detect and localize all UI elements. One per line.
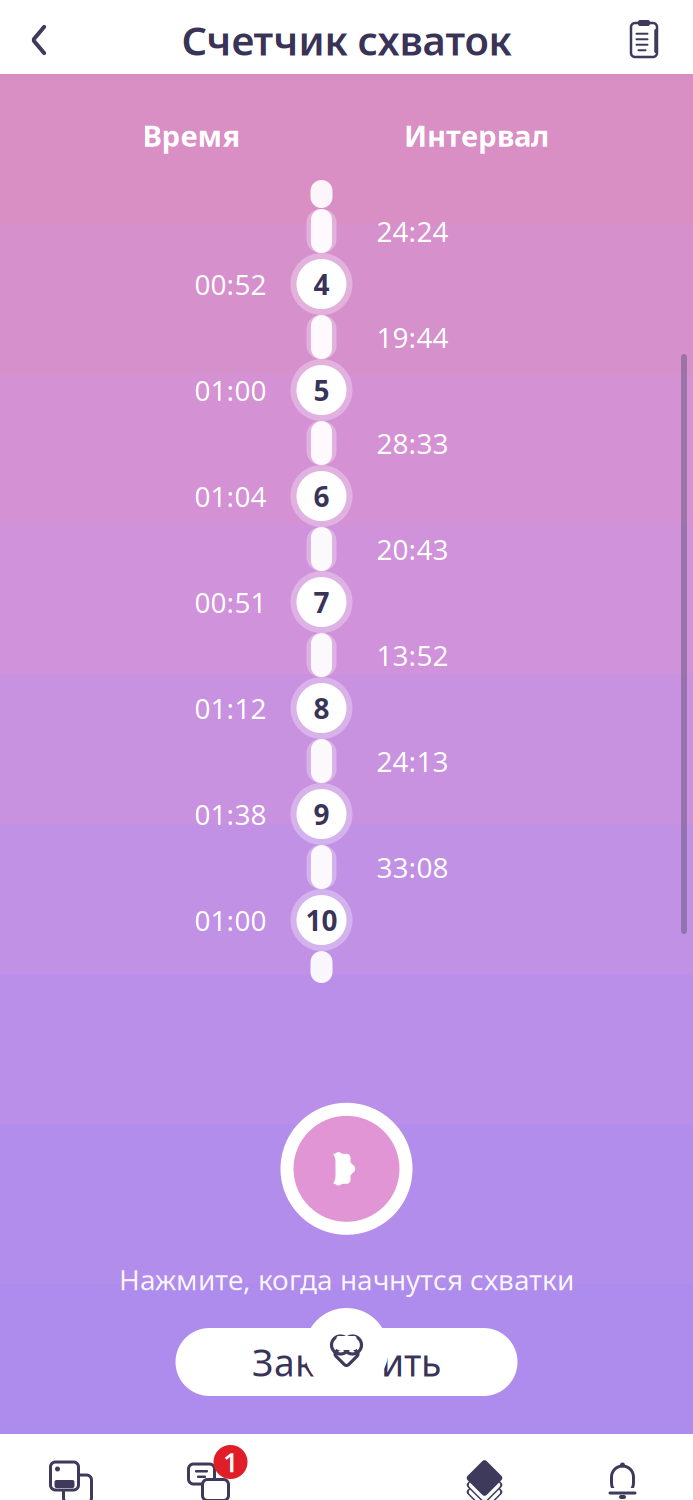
staticText: 01:04: [194, 477, 266, 515]
staticText: 19:44: [376, 318, 448, 356]
staticText: 01:12: [194, 689, 266, 727]
staticText: 10: [305, 901, 337, 939]
staticText: Интервал: [404, 116, 549, 155]
staticText: 01:00: [194, 371, 266, 409]
staticText: 4: [313, 265, 329, 303]
staticText: 00:52: [194, 265, 266, 303]
staticText: Нажмите, когда начнутся схватки: [119, 1261, 574, 1298]
button[interactable]: Подборки: [415, 1436, 553, 1500]
staticText: Счетчик схваток: [181, 13, 511, 66]
staticText: 01:38: [194, 795, 266, 833]
button[interactable]: Закончить: [175, 1328, 517, 1396]
staticText: 8: [313, 689, 329, 727]
staticText: Закончить: [252, 1337, 441, 1387]
staticText: 01:00: [194, 901, 266, 939]
staticText: 13:52: [376, 636, 448, 674]
button[interactable]: Уведомления: [553, 1436, 691, 1500]
staticText: 1: [223, 1444, 238, 1480]
staticText: 24:13: [376, 742, 448, 780]
button[interactable]: Сообщения, 1 новое: [139, 1436, 277, 1500]
button[interactable]: Старт схватки: [276, 1099, 416, 1239]
staticText: 9: [313, 795, 329, 833]
staticText: 00:51: [194, 583, 266, 621]
staticText: 20:43: [376, 530, 448, 568]
staticText: 33:08: [376, 848, 448, 886]
button[interactable]: Галерея: [1, 1436, 139, 1500]
button[interactable]: Избранное: [304, 1308, 388, 1392]
button[interactable]: Назад: [8, 9, 70, 71]
button[interactable]: История схваток: [613, 9, 675, 71]
staticText: Время: [142, 116, 240, 155]
staticText: 7: [313, 583, 329, 621]
staticText: 24:24: [376, 212, 448, 250]
staticText: 6: [313, 477, 329, 515]
staticText: 28:33: [376, 424, 448, 462]
staticText: 5: [313, 371, 329, 409]
